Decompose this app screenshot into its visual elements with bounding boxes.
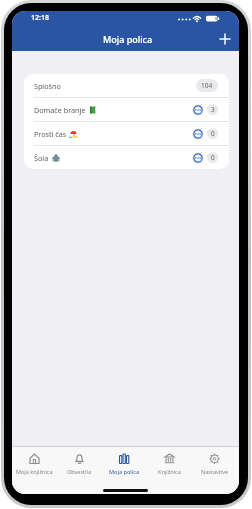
staticText: 3 <box>211 105 215 114</box>
button[interactable]: Prosti čas <box>24 122 229 145</box>
button[interactable] <box>193 153 203 163</box>
button[interactable]: Moja knjižnica <box>12 447 57 478</box>
button[interactable] <box>193 129 203 139</box>
button[interactable]: Nastavitve <box>192 447 237 478</box>
staticText: Nastavitve <box>201 468 229 475</box>
button[interactable]: Moja polica <box>102 447 147 478</box>
button[interactable] <box>217 31 233 47</box>
staticText: Obvestila <box>67 468 92 475</box>
staticText: Moja knjižnica <box>16 468 53 475</box>
staticText: Moja polica <box>109 468 140 475</box>
staticText: Domače branje <box>34 105 86 115</box>
button[interactable] <box>193 105 203 115</box>
staticText: Splošno <box>34 81 61 91</box>
button[interactable]: Domače branje <box>24 98 229 121</box>
staticText: Šola <box>34 153 49 163</box>
staticText: Moja polica <box>103 33 153 45</box>
button[interactable]: Knjižnica <box>147 447 192 478</box>
staticText: Knjižnica <box>158 468 181 475</box>
staticText: Prosti čas <box>34 129 67 139</box>
button[interactable]: Šola <box>24 146 229 169</box>
button[interactable]: Splošno <box>24 74 229 97</box>
staticText: 104 <box>201 81 213 90</box>
staticText: 0 <box>211 129 215 138</box>
staticText: 12:18 <box>31 13 49 23</box>
staticText: 0 <box>211 153 215 162</box>
button[interactable]: Obvestila <box>57 447 102 478</box>
